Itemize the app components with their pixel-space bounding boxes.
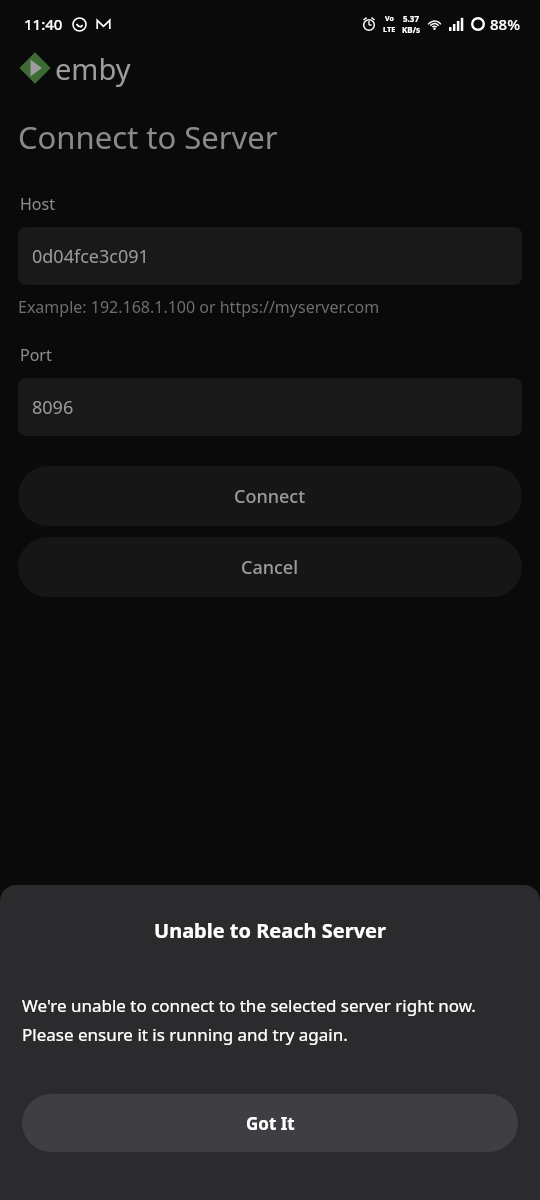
staticText: Connect to Server <box>18 116 278 158</box>
staticText: Cancel <box>241 555 299 580</box>
staticText: 5.37 <box>403 13 419 24</box>
staticText: 11:40 <box>24 14 63 34</box>
staticText: Got It <box>246 1112 295 1135</box>
staticText: LTE <box>383 24 396 34</box>
button[interactable]: 8096 <box>18 378 522 436</box>
button[interactable]: Cancel <box>18 537 522 597</box>
staticText: Host <box>20 193 55 215</box>
staticText: 88% <box>490 14 520 34</box>
staticText: 0d04fce3c091 <box>32 244 149 269</box>
staticText: Vo <box>385 14 394 24</box>
button[interactable]: Connect <box>18 466 522 526</box>
button[interactable]: 0d04fce3c091 <box>18 227 522 285</box>
staticText: Connect <box>234 484 306 509</box>
staticText: Port <box>20 344 52 366</box>
staticText: emby <box>55 49 131 88</box>
staticText: KB/s <box>402 24 420 35</box>
staticText: Unable to Reach Server <box>0 917 540 944</box>
staticText: We're unable to connect to the selected … <box>22 994 518 1046</box>
button[interactable]: Got It <box>22 1094 518 1152</box>
staticText: Example: 192.168.1.100 or https://myserv… <box>18 296 380 318</box>
staticText: 8096 <box>32 395 74 420</box>
